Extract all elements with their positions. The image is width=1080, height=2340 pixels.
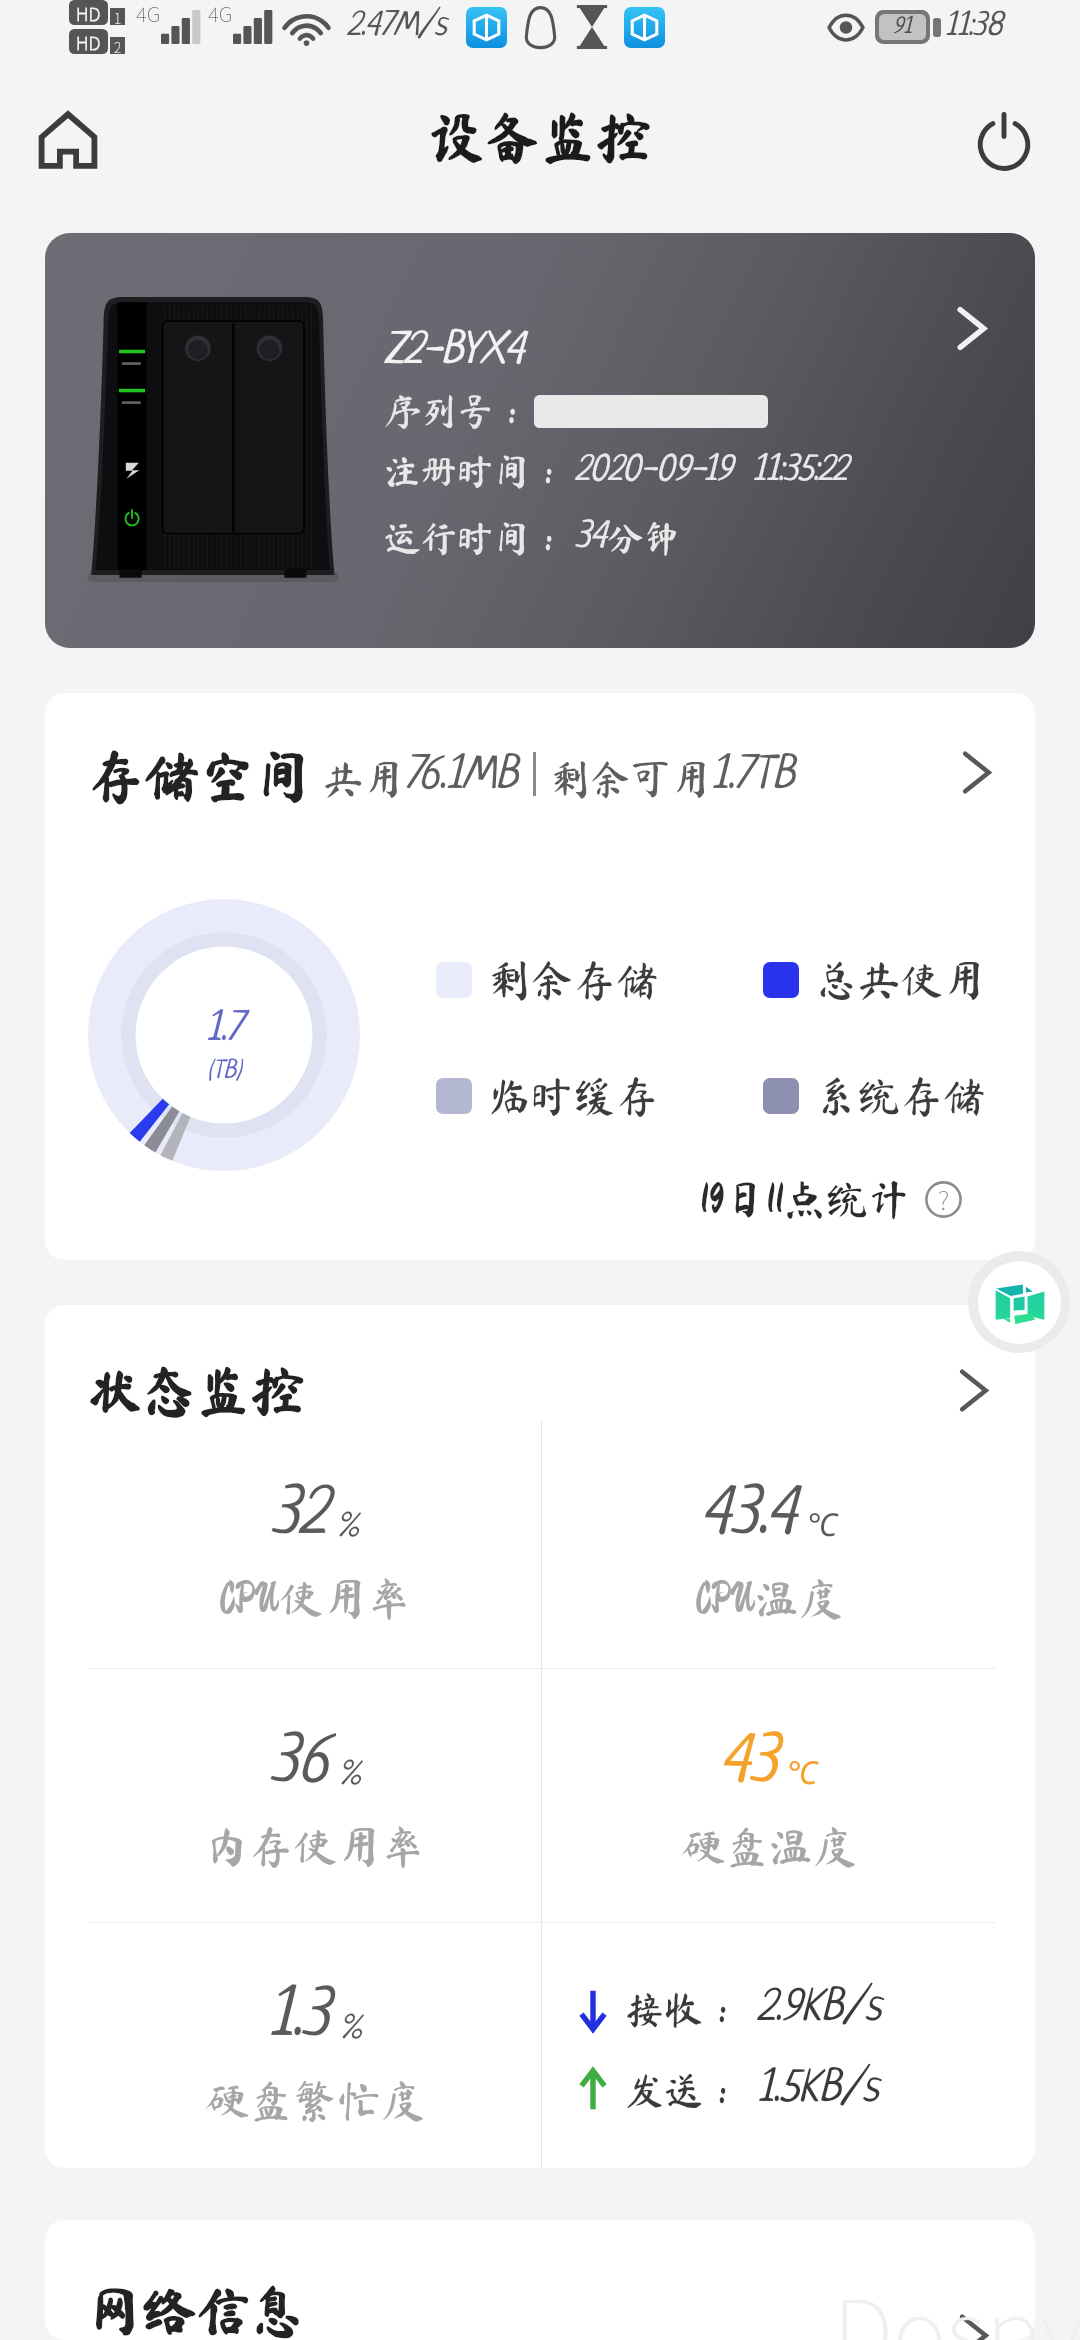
staticText: ℃ bbox=[788, 1750, 818, 1793]
button[interactable]: Apps bbox=[968, 1251, 1070, 1353]
staticText: 剩余存储 bbox=[488, 958, 659, 1001]
staticText: Dospy bbox=[833, 2261, 1080, 2340]
staticText: HD bbox=[76, 0, 101, 25]
staticText: 2 bbox=[114, 37, 122, 54]
staticText: 序列号： bbox=[384, 393, 531, 430]
staticText: ℃ bbox=[808, 1502, 838, 1545]
staticText: CPU温度 bbox=[695, 1576, 843, 1620]
staticText: Z2-BYX4 bbox=[384, 328, 525, 376]
staticText: 36 bbox=[270, 1729, 328, 1801]
staticText: 接收： bbox=[625, 1990, 743, 2029]
staticText: % bbox=[337, 1512, 358, 1545]
staticText: (TB) bbox=[207, 1058, 242, 1086]
staticText: 91 bbox=[893, 15, 912, 40]
staticText: 系统存储 bbox=[815, 1074, 986, 1117]
button[interactable]: 状态监控 bbox=[45, 1305, 1035, 2168]
staticText: 剩余可用 bbox=[550, 759, 711, 799]
staticText: % bbox=[340, 2014, 361, 2047]
staticText: 19日11点统计 bbox=[700, 1178, 910, 1220]
staticText: 1.7TB bbox=[711, 752, 795, 801]
staticText: 76.1MB bbox=[404, 752, 519, 801]
staticText: 发送： bbox=[625, 2071, 743, 2110]
staticText: % bbox=[339, 1760, 360, 1793]
staticText: 2020-09-19 11:35:22 bbox=[575, 452, 847, 490]
staticText: 设备监控 bbox=[429, 109, 652, 165]
staticText: 43.4 bbox=[701, 1481, 797, 1553]
staticText: 1.7 bbox=[206, 1008, 243, 1051]
staticText: 43 bbox=[720, 1729, 777, 1801]
staticText: 32 bbox=[271, 1481, 326, 1553]
staticText: 11:38 bbox=[945, 10, 1003, 45]
staticText: 硬盘繁忙度 bbox=[205, 2078, 425, 2122]
button[interactable]: Home bbox=[39, 111, 97, 169]
staticText: 运行时间： bbox=[384, 520, 567, 557]
staticText: 4G bbox=[136, 0, 161, 28]
button[interactable]: Z2-BYX4 bbox=[45, 233, 1035, 648]
staticText: 注册时间： bbox=[384, 453, 567, 490]
staticText: ? bbox=[938, 1180, 950, 1217]
staticText: 2.47M/s bbox=[347, 9, 447, 45]
staticText: 34 bbox=[575, 518, 607, 558]
staticText: 硬盘温度 bbox=[681, 1824, 857, 1868]
staticText: 1.3 bbox=[268, 1983, 329, 2055]
staticText: 分钟 bbox=[607, 520, 681, 557]
staticText: CPU使用率 bbox=[219, 1576, 411, 1620]
staticText: 存储空间 bbox=[88, 748, 312, 804]
staticText: 共用 bbox=[323, 759, 404, 799]
staticText: 临时缓存 bbox=[488, 1074, 659, 1117]
staticText: 1 bbox=[114, 8, 122, 25]
staticText: HD bbox=[76, 29, 101, 54]
staticText: 内存使用率 bbox=[205, 1824, 425, 1868]
staticText: 状态监控 bbox=[88, 1363, 305, 1417]
staticText: 4G bbox=[208, 0, 233, 28]
button[interactable]: 存储空间 bbox=[45, 693, 1035, 1260]
button[interactable]: Power bbox=[975, 111, 1033, 169]
staticText: 2.9KB/s bbox=[757, 1985, 881, 2033]
staticText: 网络信息 bbox=[88, 2283, 305, 2337]
staticText: 总共使用 bbox=[815, 958, 986, 1001]
button[interactable]: 网络信息 bbox=[45, 2220, 1035, 2340]
staticText: 1.5KB/s bbox=[757, 2066, 879, 2114]
